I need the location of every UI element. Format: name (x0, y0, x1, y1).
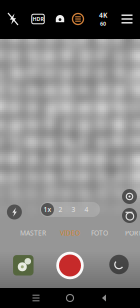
button[interactable]: Flash (5, 203, 23, 221)
button[interactable]: Settings (120, 187, 138, 205)
button[interactable]: PORTRAIT (125, 227, 140, 239)
staticText: 3 (71, 205, 75, 214)
button[interactable]: Filters (120, 206, 138, 224)
button[interactable]: 4 (80, 203, 93, 216)
staticText: 60 (100, 20, 106, 27)
button[interactable]: 2 (54, 203, 67, 216)
staticText: 2 (58, 205, 62, 214)
button[interactable]: Switch camera (109, 254, 129, 274)
button[interactable]: FOTO (88, 227, 110, 239)
staticText: PORTRAIT (125, 229, 140, 237)
button[interactable]: Video stabilisation (50, 9, 70, 29)
button[interactable]: Shutter (56, 252, 84, 279)
button[interactable]: VIDEO (58, 227, 82, 239)
staticText: 4K (99, 11, 107, 20)
staticText: 4 (84, 205, 88, 214)
button[interactable]: 1x (41, 203, 54, 216)
button[interactable]: Recents (26, 288, 46, 308)
button[interactable]: 3 (67, 203, 80, 216)
button[interactable]: AI scene detection (68, 9, 88, 29)
staticText: 1x (43, 205, 51, 214)
staticText: VIDEO (60, 229, 80, 237)
staticText: FOTO (91, 229, 108, 237)
button[interactable]: Home (60, 288, 80, 308)
button[interactable]: Resolution 4K 60fps (92, 9, 114, 29)
button[interactable]: Flash off (3, 9, 23, 29)
staticText: HDR (32, 15, 43, 23)
button[interactable]: MASTER (18, 227, 48, 239)
button[interactable]: Settings (117, 9, 137, 29)
staticText: MASTER (20, 229, 46, 237)
button[interactable]: Gallery (13, 255, 34, 276)
button[interactable]: Back (94, 288, 114, 308)
button[interactable]: HDR (28, 9, 48, 29)
